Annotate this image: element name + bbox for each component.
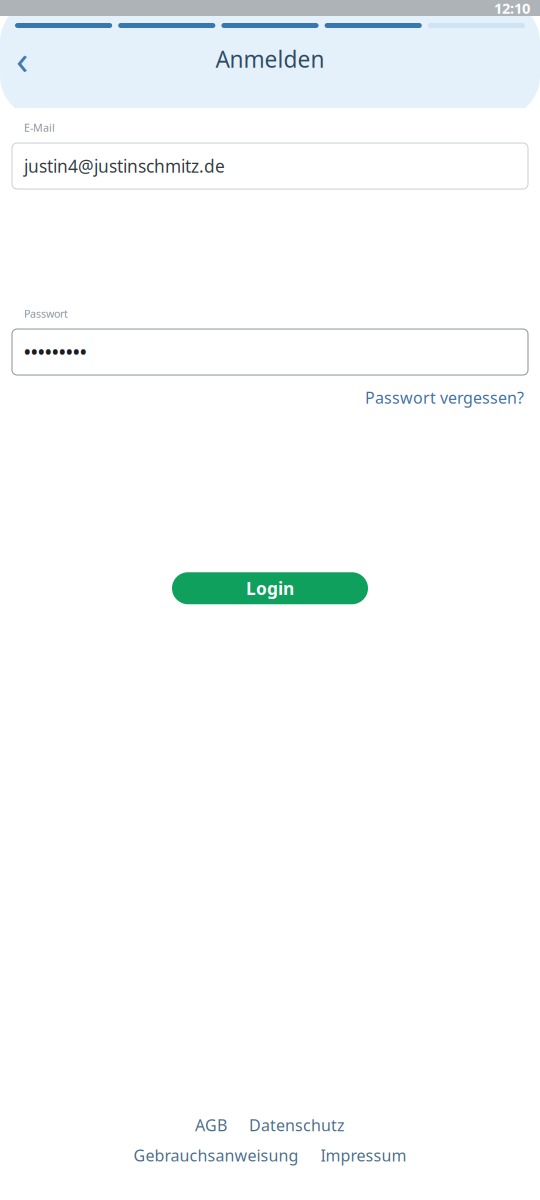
button[interactable]: Login bbox=[172, 572, 368, 604]
staticText: ••••••••• bbox=[24, 340, 87, 363]
button[interactable]: Datenschutz bbox=[247, 1112, 347, 1138]
staticText: AGB bbox=[195, 1114, 227, 1136]
staticText: 12:10 bbox=[494, 0, 530, 18]
staticText: ‹ bbox=[16, 32, 28, 85]
staticText: Anmelden bbox=[215, 44, 324, 74]
staticText: Gebrauchsanweisung bbox=[133, 1145, 298, 1166]
staticText: Login bbox=[246, 577, 294, 600]
staticText: Passwort bbox=[24, 306, 68, 321]
button[interactable]: Passwort vergessen? bbox=[361, 383, 528, 412]
staticText: Impressum bbox=[320, 1145, 406, 1166]
staticText: Passwort vergessen? bbox=[365, 387, 524, 408]
staticText: justin4@justinschmitz.de bbox=[24, 154, 225, 177]
button[interactable]: Impressum bbox=[318, 1143, 408, 1168]
staticText: E-Mail bbox=[24, 120, 55, 135]
button[interactable]: Gebrauchsanweisung bbox=[131, 1143, 300, 1168]
staticText: Datenschutz bbox=[249, 1114, 345, 1136]
button[interactable]: AGB bbox=[193, 1112, 229, 1138]
button[interactable]: Back bbox=[0, 37, 44, 81]
